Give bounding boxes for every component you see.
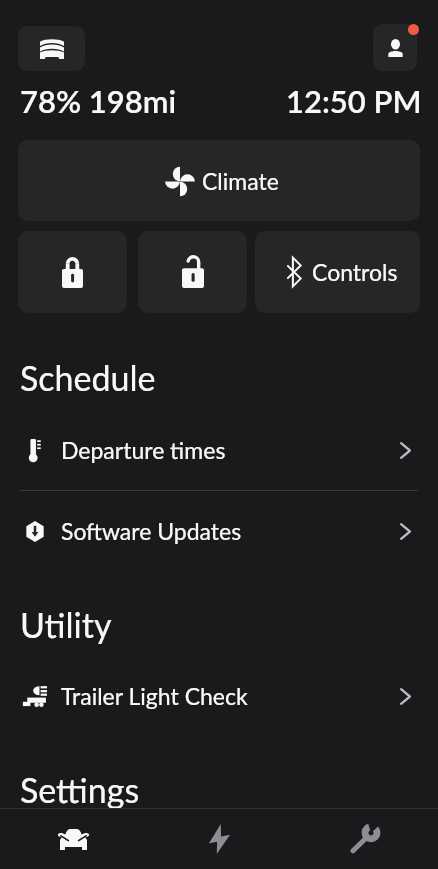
button[interactable]: Lock: [18, 231, 127, 313]
button[interactable]: Departure times: [0, 410, 438, 490]
button[interactable]: Defrost: [18, 26, 85, 71]
button[interactable]: Unlock: [138, 231, 247, 313]
button[interactable]: Profile: [373, 24, 417, 71]
button[interactable]: Trailer Light Check: [0, 656, 438, 736]
staticText: 12:50 PM: [286, 82, 422, 119]
staticText: Utility: [20, 604, 112, 645]
button[interactable]: Software Updates: [0, 491, 438, 571]
button[interactable]: Controls: [255, 231, 420, 313]
staticText: 78% 198mi: [20, 82, 177, 119]
button[interactable]: Charging: [146, 809, 292, 869]
staticText: Controls: [312, 258, 398, 286]
button[interactable]: Vehicle: [0, 809, 146, 869]
staticText: Trailer Light Check: [61, 682, 248, 710]
staticText: Schedule: [20, 357, 156, 398]
button[interactable]: Climate: [18, 140, 420, 221]
staticText: Settings: [20, 769, 140, 810]
staticText: Departure times: [61, 436, 226, 464]
staticText: Software Updates: [61, 517, 242, 545]
staticText: Climate: [202, 167, 279, 195]
button[interactable]: Service: [292, 809, 438, 869]
